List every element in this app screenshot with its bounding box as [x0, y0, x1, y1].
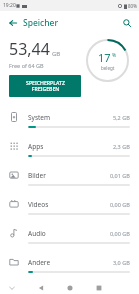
staticText: 53,44	[9, 38, 50, 60]
staticText: 17	[98, 50, 111, 65]
staticText: 19:20	[3, 2, 16, 9]
button[interactable]: Audio	[0, 224, 139, 253]
button[interactable]: SPEICHERPLATZ FREIGEBEN	[9, 75, 81, 97]
staticText: Speicher	[23, 17, 59, 29]
staticText: belegt	[101, 65, 115, 71]
staticText: 0,00 GB	[110, 230, 130, 237]
staticText: 0,01 GB	[110, 172, 130, 179]
staticText: 3,0 GB	[113, 259, 130, 266]
button[interactable]: Back	[34, 282, 48, 294]
staticText: Videos	[28, 200, 110, 209]
button[interactable]: Home	[63, 282, 77, 294]
button[interactable]: Videos	[0, 195, 139, 224]
staticText: Free of 64 GB	[9, 62, 44, 69]
button[interactable]: Back	[5, 15, 20, 30]
button[interactable]: System	[0, 108, 139, 137]
staticText: 80%	[128, 3, 137, 9]
staticText: %	[112, 52, 117, 59]
staticText: 0,00 GB	[110, 201, 130, 208]
staticText: 2,3 GB	[113, 143, 130, 150]
staticText: Andere	[28, 258, 113, 267]
button[interactable]: Search	[119, 15, 135, 31]
staticText: Apps	[28, 142, 113, 151]
staticText: SPEICHERPLATZ FREIGEBEN	[26, 79, 65, 93]
button[interactable]: Bilder	[0, 166, 139, 195]
button[interactable]: Apps	[0, 137, 139, 166]
staticText: Bilder	[28, 171, 110, 180]
staticText: GB	[52, 50, 61, 58]
button[interactable]: Andere	[0, 253, 139, 282]
button[interactable]: Hide	[6, 282, 18, 294]
button[interactable]: Recents	[92, 282, 106, 294]
staticText: System	[28, 113, 113, 122]
staticText: 5,2 GB	[113, 114, 130, 121]
staticText: Audio	[28, 229, 110, 238]
